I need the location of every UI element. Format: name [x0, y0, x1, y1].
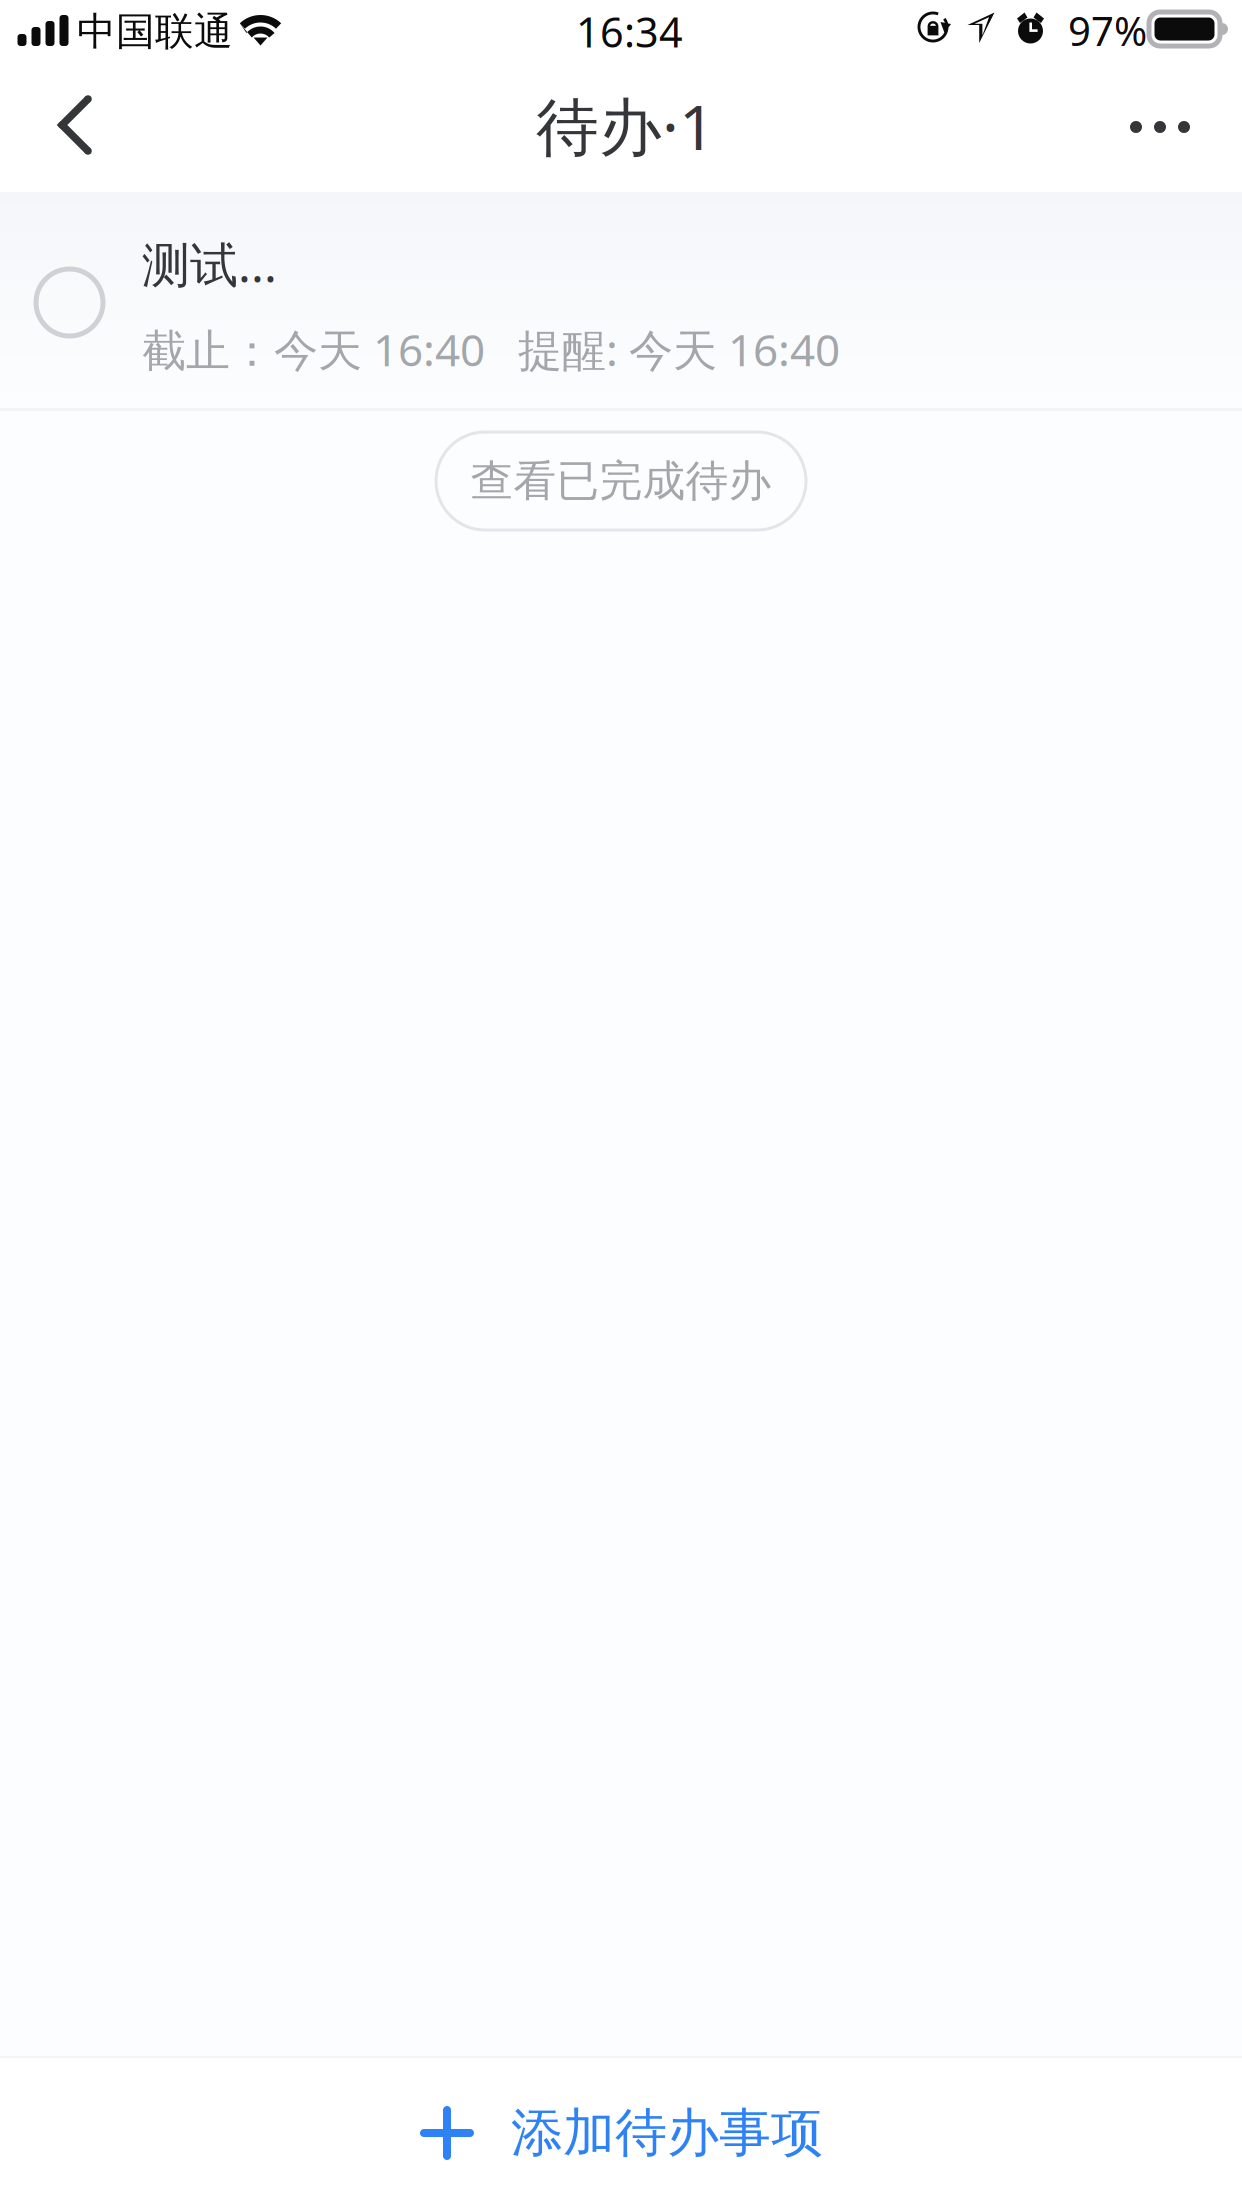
button[interactable]: Back: [0, 72, 150, 178]
button[interactable]: 添加待办事项: [0, 2058, 1242, 2208]
staticText: 查看已完成待办: [470, 455, 771, 507]
staticText: 截止：今天 16:40 提醒: 今天 16:40: [142, 320, 840, 378]
staticText: 待办·1: [536, 84, 715, 167]
staticText: 16:34: [576, 4, 683, 59]
staticText: 97%: [1068, 4, 1147, 57]
staticText: 中国联通: [77, 8, 233, 55]
button[interactable]: 查看已完成待办: [436, 432, 806, 530]
staticText: 测试...: [142, 232, 277, 296]
button[interactable]: Mark “测试…” as complete: [1, 214, 138, 391]
staticText: 添加待办事项: [511, 2101, 823, 2165]
button[interactable]: More options: [1090, 72, 1230, 182]
button[interactable]: 测试...: [142, 232, 1242, 409]
